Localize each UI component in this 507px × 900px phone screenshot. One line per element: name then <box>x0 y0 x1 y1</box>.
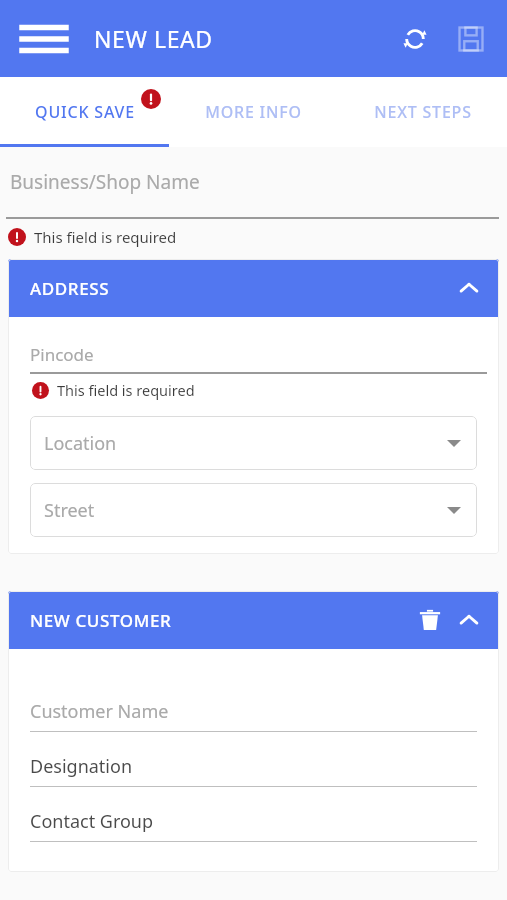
button[interactable]: Save <box>447 15 495 63</box>
button[interactable]: Collapse section <box>453 272 485 304</box>
button[interactable]: NEXT STEPS <box>338 77 507 147</box>
staticText: This field is required <box>34 227 177 247</box>
button[interactable]: Open navigation menu <box>18 17 70 61</box>
staticText: Location <box>44 431 117 456</box>
button[interactable]: ADDRESS <box>8 259 499 317</box>
button[interactable]: Street <box>30 483 477 537</box>
button[interactable]: Location <box>30 416 477 470</box>
staticText: NEXT STEPS <box>374 101 472 123</box>
staticText: Street <box>44 498 95 523</box>
button[interactable]: Collapse section <box>453 604 485 636</box>
staticText: NEW LEAD <box>94 23 213 54</box>
staticText: Customer Name <box>30 699 169 724</box>
staticText: QUICK SAVE <box>35 101 135 123</box>
button[interactable]: MORE INFO <box>169 77 338 147</box>
staticText: This field is required <box>57 380 195 400</box>
staticText: Contact Group <box>30 809 154 834</box>
staticText: Designation <box>30 754 133 779</box>
button[interactable]: Delete <box>413 603 447 637</box>
staticText: MORE INFO <box>205 101 302 123</box>
button[interactable]: Refresh <box>391 15 439 63</box>
staticText: Pincode <box>30 343 94 366</box>
staticText: NEW CUSTOMER <box>30 609 172 632</box>
staticText: ADDRESS <box>30 277 110 300</box>
button[interactable]: QUICK SAVE <box>0 77 169 147</box>
staticText: Business/Shop Name <box>10 169 200 195</box>
button[interactable]: NEW CUSTOMER <box>8 591 499 649</box>
